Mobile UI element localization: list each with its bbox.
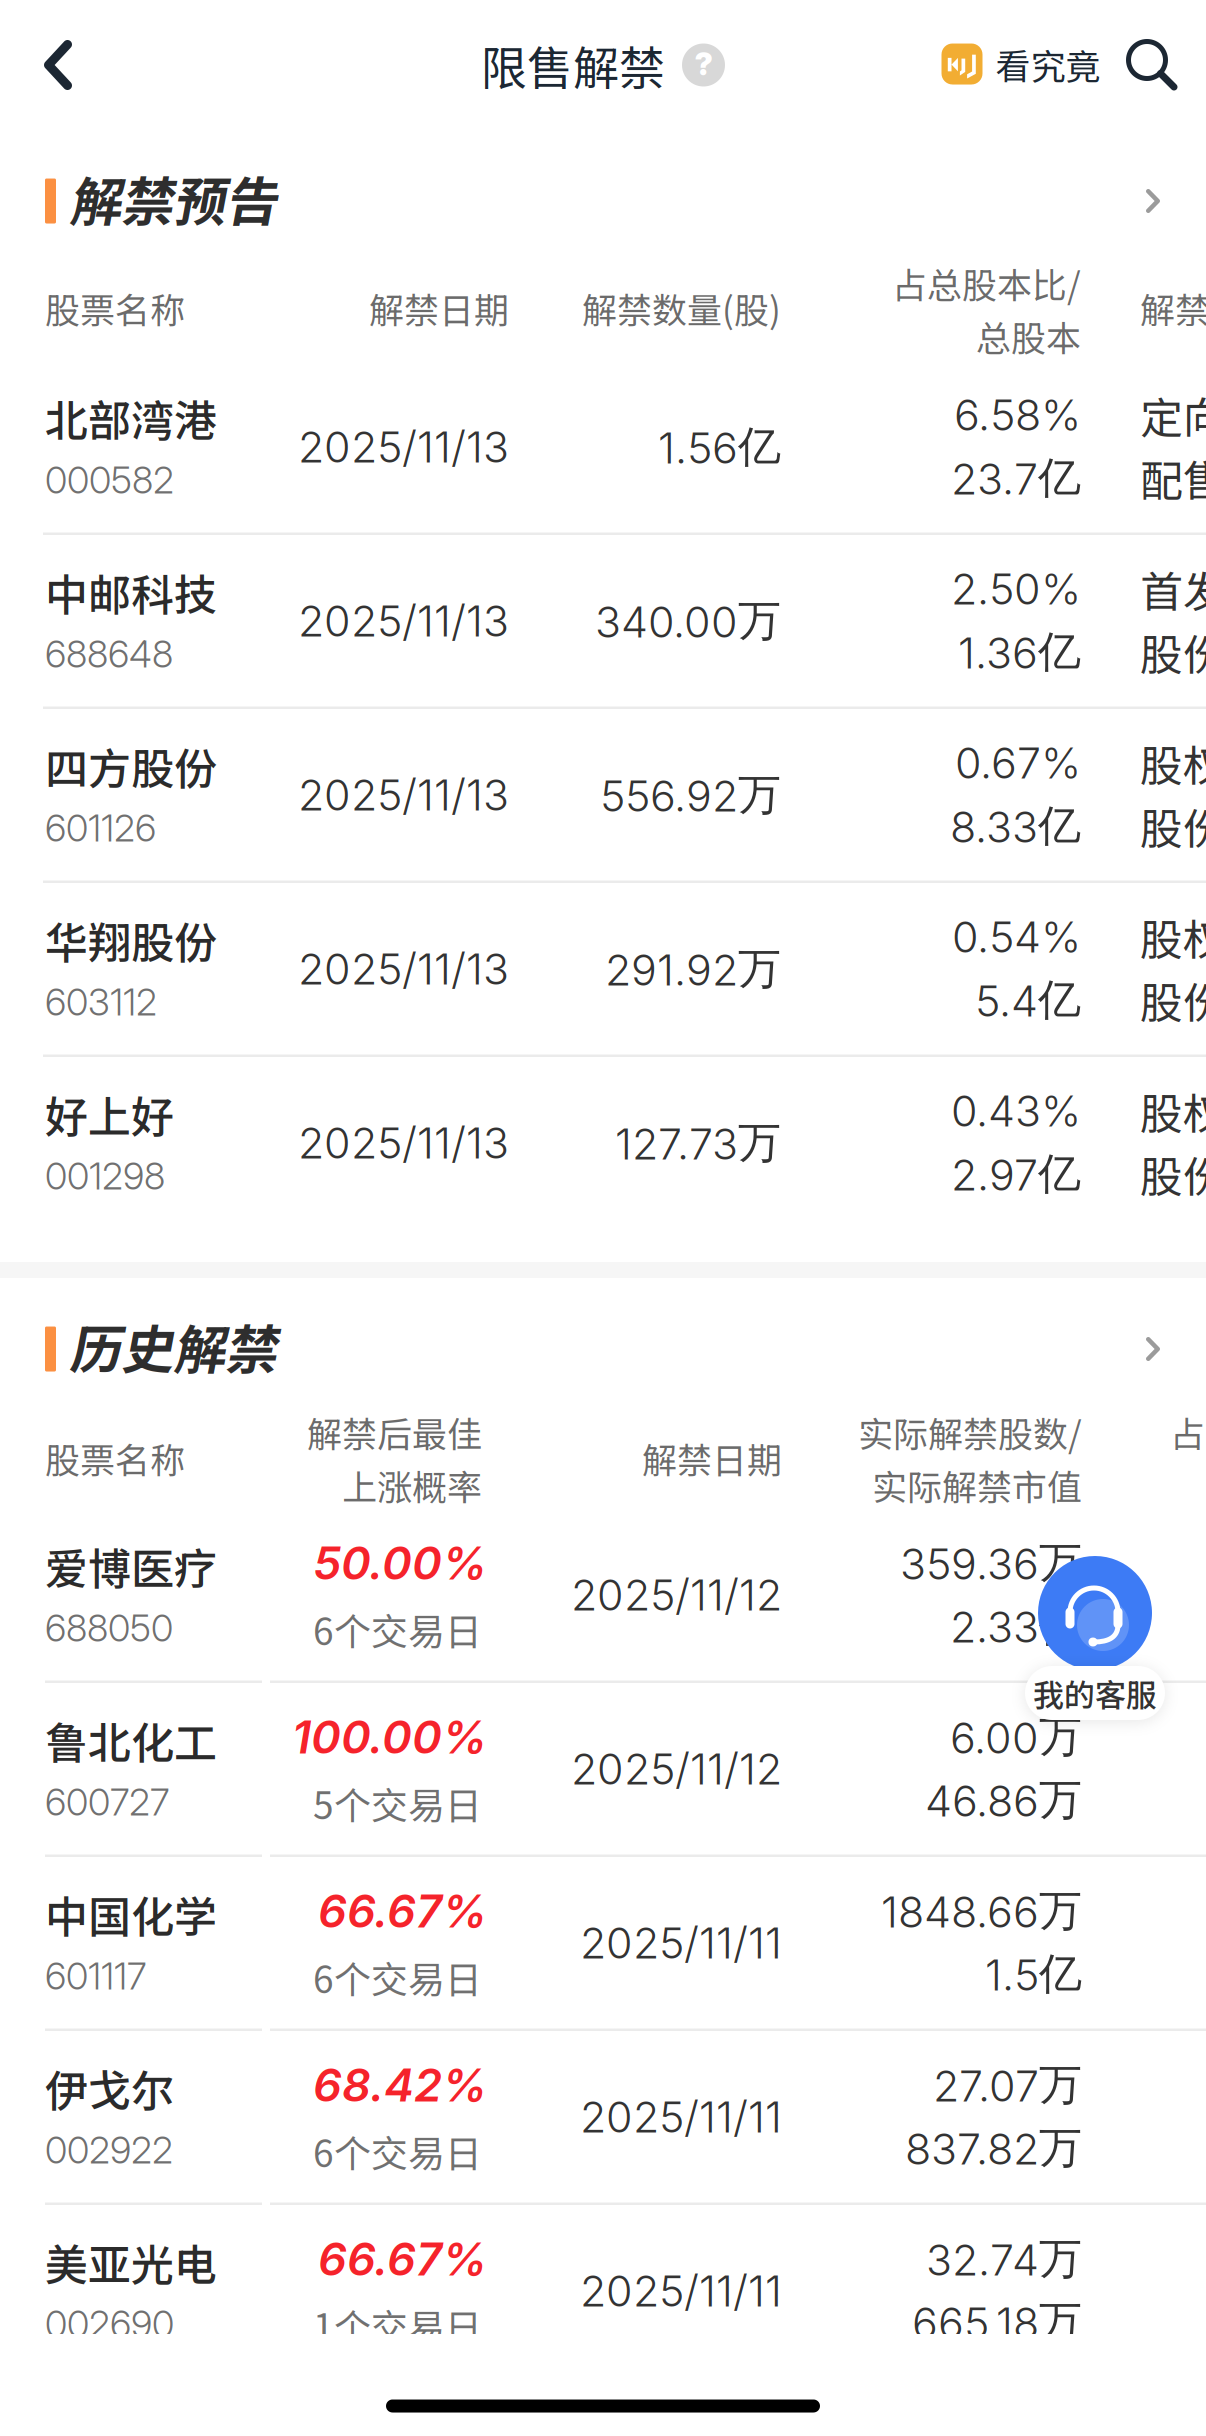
staticText: 27.07万: [933, 2058, 1082, 2112]
staticText: 股份: [1140, 795, 1206, 857]
staticText: 665.18万: [912, 2295, 1082, 2349]
staticText: 50.00%: [313, 1536, 487, 1590]
staticText: 66.67%: [318, 2232, 487, 2286]
staticText: 股份: [1140, 621, 1206, 683]
staticText: 定向: [1140, 384, 1206, 446]
staticText: 127.73万: [615, 1116, 781, 1170]
staticText: 837.82万: [905, 2121, 1082, 2175]
staticText: 46.86万: [925, 1773, 1082, 1827]
button[interactable]: 好上好: [0, 1057, 1206, 1231]
staticText: 解禁方式: [1140, 283, 1206, 333]
button[interactable]: 华翔股份: [0, 883, 1206, 1057]
button[interactable]: 北部湾港: [0, 361, 1206, 535]
staticText: 002690: [45, 2302, 174, 2346]
staticText: 历史解禁: [72, 1318, 280, 1380]
button[interactable]: 历史解禁: [0, 1278, 1206, 1398]
staticText: 100.00%: [292, 1710, 487, 1764]
staticText: 四方股份: [45, 735, 217, 797]
staticText: 股份: [1140, 969, 1206, 1031]
staticText: 6个交易日: [313, 1602, 482, 1656]
staticText: 我的客服: [1033, 1671, 1157, 1715]
staticText: 32.74万: [926, 2232, 1082, 2286]
button[interactable]: Search: [1108, 21, 1194, 107]
staticText: 2025/11/12: [571, 1569, 782, 1621]
staticText: 2025/11/13: [298, 421, 509, 473]
staticText: 340.00万: [595, 594, 781, 648]
staticText: 鲁北化工: [45, 1709, 217, 1771]
staticText: 2025/11/12: [571, 1743, 782, 1795]
staticText: 首发: [1140, 558, 1206, 620]
staticText: 股票名称: [45, 283, 185, 333]
staticText: 0.43%: [951, 1085, 1081, 1137]
staticText: 中国化学: [45, 1883, 217, 1945]
staticText: 股权: [1140, 732, 1206, 794]
staticText: 解禁后最佳: [307, 1407, 482, 1457]
staticText: 2025/11/11: [580, 2265, 782, 2317]
button[interactable]: 四方股份: [0, 709, 1206, 883]
staticText: 股份: [1140, 1143, 1206, 1205]
staticText: 601117: [45, 1954, 146, 1998]
staticText: 1.5亿: [985, 1947, 1082, 2001]
staticText: 好上好: [45, 1083, 174, 1145]
staticText: 美亚光电: [45, 2231, 217, 2293]
staticText: 556.92万: [600, 768, 781, 822]
staticText: 000582: [45, 458, 174, 502]
staticText: 占总股本比/: [892, 258, 1081, 308]
staticText: 总股本: [976, 311, 1081, 361]
staticText: 占总: [1170, 1407, 1206, 1457]
staticText: 688648: [45, 632, 173, 676]
staticText: 1.56亿: [658, 420, 781, 474]
staticText: 0.54%: [952, 911, 1081, 963]
staticText: 伊戈尔: [45, 2057, 174, 2119]
staticText: ?: [694, 45, 712, 82]
staticText: 23.7亿: [951, 451, 1081, 505]
staticText: 6个交易日: [313, 1950, 482, 2004]
staticText: 中邮科技: [45, 561, 217, 623]
button[interactable]: 爱博医疗: [0, 1509, 1206, 1683]
staticText: 603112: [45, 980, 157, 1024]
staticText: 2025/11/11: [580, 2091, 782, 2143]
staticText: 68.42%: [313, 2058, 487, 2112]
staticText: 1.36亿: [958, 625, 1081, 679]
staticText: 66.67%: [318, 1884, 487, 1938]
staticText: 2025/11/13: [298, 943, 509, 995]
staticText: 股权: [1140, 1080, 1206, 1142]
staticText: 2025/11/13: [298, 1117, 509, 1169]
staticText: 5.4亿: [975, 973, 1081, 1027]
staticText: 上涨概率: [342, 1460, 482, 1510]
button[interactable]: 解禁预告: [0, 130, 1206, 250]
button[interactable]: 中邮科技: [0, 535, 1206, 709]
staticText: 359.36万: [900, 1536, 1082, 1590]
staticText: 2.50%: [951, 563, 1081, 615]
staticText: 1848.66万: [881, 1884, 1082, 1938]
button[interactable]: 美亚光电: [0, 2205, 1206, 2379]
staticText: 2.33亿: [950, 1599, 1082, 1653]
staticText: 股权: [1140, 906, 1206, 968]
staticText: 002922: [45, 2128, 173, 2172]
staticText: 2025/11/13: [298, 769, 509, 821]
staticText: 看究竟: [995, 39, 1100, 89]
staticText: 爱博医疗: [45, 1535, 217, 1597]
staticText: 688050: [45, 1606, 173, 1650]
staticText: 5个交易日: [313, 1776, 482, 1830]
staticText: 限售解禁: [481, 32, 665, 98]
staticText: 股票名称: [45, 1433, 185, 1483]
button[interactable]: 中国化学: [0, 1857, 1206, 2031]
button[interactable]: 鲁北化工: [0, 1683, 1206, 1857]
staticText: 0.67%: [955, 737, 1081, 789]
staticText: 解禁日期: [369, 283, 509, 333]
button[interactable]: Back: [8, 0, 108, 130]
staticText: 2.97亿: [951, 1147, 1081, 1201]
button[interactable]: 伊戈尔: [0, 2031, 1206, 2205]
button[interactable]: 我的客服: [1020, 1556, 1170, 1724]
staticText: 实际解禁股数/: [858, 1407, 1082, 1457]
staticText: 解禁日期: [642, 1433, 782, 1483]
staticText: 北部湾港: [45, 387, 217, 449]
staticText: 配售: [1140, 447, 1206, 509]
staticText: 8.33亿: [950, 799, 1081, 853]
staticText: 6.58%: [954, 389, 1081, 441]
staticText: 实际解禁市值: [872, 1460, 1082, 1510]
button[interactable]: 看究竟: [941, 9, 1100, 119]
staticText: 600727: [45, 1780, 169, 1824]
staticText: 解禁预告: [72, 170, 280, 232]
